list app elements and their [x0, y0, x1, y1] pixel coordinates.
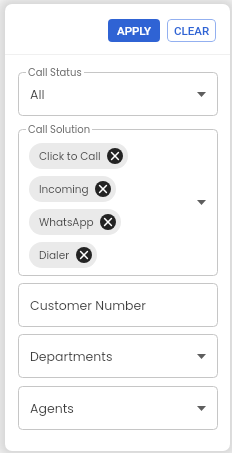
button[interactable]: Click to Call: [18, 129, 218, 276]
button[interactable]: Incoming: [29, 176, 116, 202]
button[interactable]: APPLY: [108, 19, 160, 42]
staticText: Dialer: [39, 248, 70, 263]
button[interactable]: Departments: [18, 334, 218, 378]
button[interactable]: All: [18, 72, 218, 116]
staticText: APPLY: [117, 24, 152, 37]
button[interactable]: Dialer: [29, 242, 97, 268]
button[interactable]: Remove WhatsApp: [100, 214, 116, 230]
staticText: Click to Call: [39, 149, 101, 164]
button[interactable]: Remove Incoming: [95, 181, 111, 197]
staticText: Incoming: [39, 182, 89, 197]
button[interactable]: Customer Number: [18, 283, 218, 327]
button[interactable]: Remove Dialer: [76, 247, 92, 263]
button[interactable]: CLEAR: [167, 19, 216, 42]
button[interactable]: Remove Click to Call: [107, 148, 123, 164]
button[interactable]: Agents: [18, 386, 218, 430]
button[interactable]: WhatsApp: [29, 209, 121, 235]
staticText: Call Solution: [28, 122, 91, 136]
staticText: Call Status: [28, 65, 82, 79]
staticText: CLEAR: [174, 24, 210, 37]
staticText: WhatsApp: [39, 215, 94, 230]
staticText: Departments: [30, 348, 113, 365]
staticText: All: [30, 86, 45, 103]
staticText: Customer Number: [30, 297, 146, 314]
staticText: Agents: [30, 400, 74, 417]
button[interactable]: Click to Call: [29, 143, 128, 169]
